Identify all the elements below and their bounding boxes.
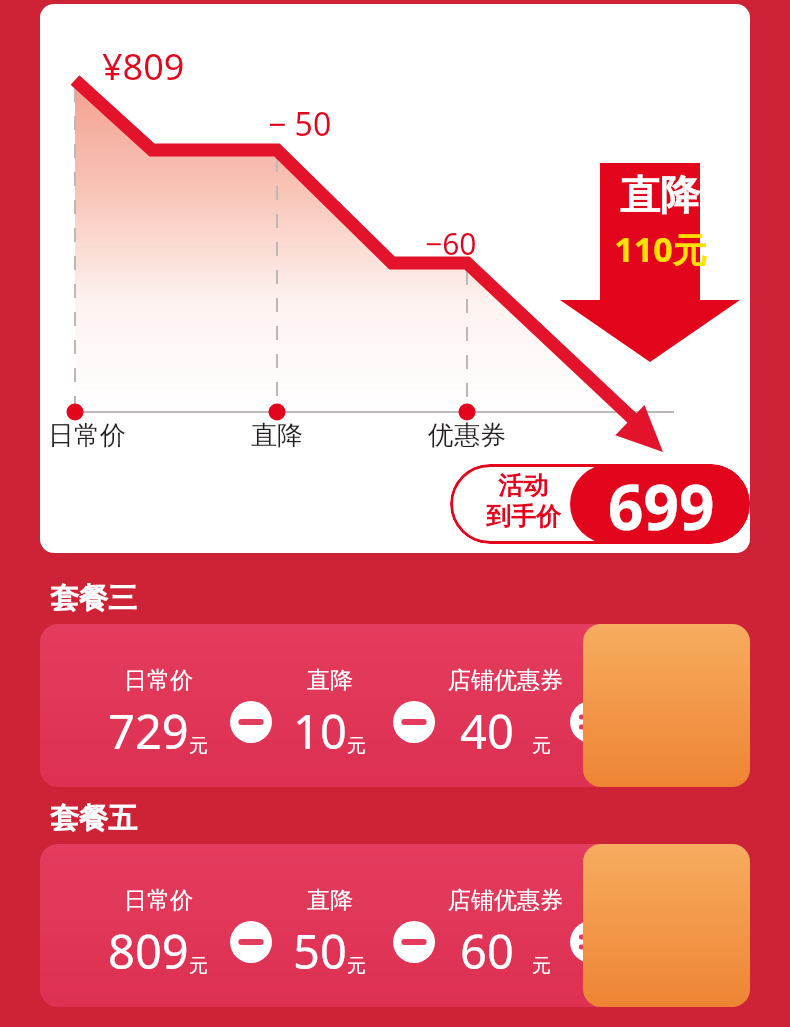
button[interactable]: Minus xyxy=(393,921,435,963)
button[interactable]: 日常价 xyxy=(40,624,750,787)
staticText: 店铺优惠券 xyxy=(448,666,563,695)
staticText: 直降 xyxy=(307,886,353,915)
staticText: 日常价 xyxy=(124,886,193,915)
button[interactable]: 日常价 xyxy=(40,844,750,1007)
staticText: 10 xyxy=(293,699,347,763)
staticText: 活动 xyxy=(498,470,548,501)
button[interactable]: Equals xyxy=(570,921,612,963)
staticText: − 50 xyxy=(268,102,332,146)
button[interactable]: 活动到手价 xyxy=(583,844,750,1007)
staticText: ¥809 xyxy=(102,42,185,91)
staticText: 直降 xyxy=(251,419,303,452)
button[interactable]: Minus xyxy=(230,701,272,743)
staticText: 套餐五 xyxy=(50,800,137,837)
staticText: 日常价 xyxy=(48,419,126,452)
staticText: 元 xyxy=(347,954,366,978)
staticText: 元 xyxy=(532,954,551,978)
staticText: 优惠券 xyxy=(428,419,506,452)
staticText: 110元 xyxy=(614,226,707,272)
staticText: 店铺优惠券 xyxy=(448,886,563,915)
staticText: 元 xyxy=(189,954,208,978)
staticText: 套餐三 xyxy=(50,580,137,617)
staticText: 729 xyxy=(108,699,189,763)
staticText: 元 xyxy=(347,734,366,758)
staticText: 699 xyxy=(608,464,715,544)
staticText: 直降 xyxy=(307,666,353,695)
staticText: 直降 xyxy=(620,170,700,220)
button[interactable]: Equals xyxy=(570,701,612,743)
staticText: 到手价 xyxy=(486,501,561,532)
button[interactable]: Minus xyxy=(230,921,272,963)
staticText: 元 xyxy=(189,734,208,758)
button[interactable]: 活动到手价 xyxy=(583,624,750,787)
staticText: 60 xyxy=(460,919,514,983)
button[interactable]: 活动 xyxy=(450,464,750,544)
staticText: 50 xyxy=(293,919,347,983)
staticText: 40 xyxy=(460,699,514,763)
staticText: 日常价 xyxy=(124,666,193,695)
staticText: −60 xyxy=(425,223,477,264)
staticText: 809 xyxy=(108,919,189,983)
button[interactable]: Minus xyxy=(393,701,435,743)
button[interactable]: ¥809 xyxy=(40,4,750,553)
staticText: 元 xyxy=(532,734,551,758)
